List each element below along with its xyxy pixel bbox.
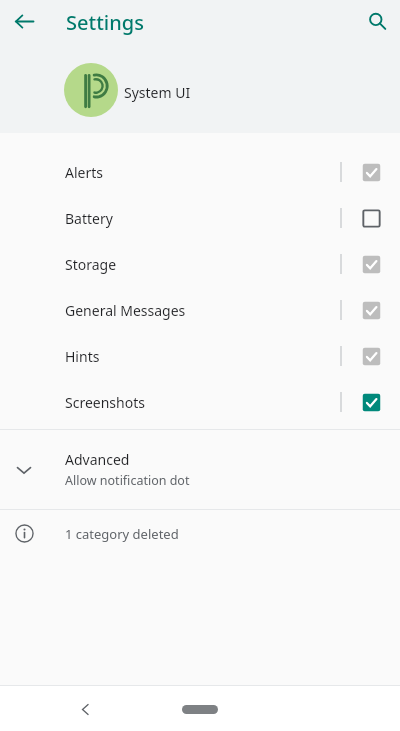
staticText: Advanced — [65, 450, 130, 469]
staticText: 1 category deleted — [65, 525, 179, 543]
staticText: Alerts — [65, 163, 340, 182]
button[interactable]: Back — [67, 691, 103, 727]
button[interactable]: Screenshots — [342, 379, 400, 425]
button[interactable]: Hints — [0, 333, 400, 379]
staticText: Battery — [65, 209, 340, 228]
button[interactable]: General Messages — [342, 287, 400, 333]
button[interactable]: Alerts — [342, 149, 400, 195]
staticText: General Messages — [65, 301, 340, 320]
button[interactable]: Advanced — [0, 430, 400, 509]
button[interactable]: Storage — [342, 241, 400, 287]
button[interactable]: Battery — [0, 195, 400, 241]
button[interactable]: Storage — [0, 241, 400, 287]
button[interactable]: Back — [7, 4, 41, 38]
button[interactable]: Search — [359, 3, 395, 39]
staticText: Hints — [65, 347, 340, 366]
staticText: Storage — [65, 255, 340, 274]
button[interactable]: Home — [164, 693, 236, 725]
staticText: System UI — [124, 83, 191, 102]
staticText: Screenshots — [65, 393, 340, 412]
button[interactable]: General Messages — [0, 287, 400, 333]
button[interactable]: Screenshots — [0, 379, 400, 425]
button[interactable]: Alerts — [0, 149, 400, 195]
staticText: Settings — [66, 9, 144, 36]
button[interactable]: Hints — [342, 333, 400, 379]
button[interactable]: Battery — [342, 195, 400, 241]
staticText: Allow notification dot — [65, 472, 190, 489]
